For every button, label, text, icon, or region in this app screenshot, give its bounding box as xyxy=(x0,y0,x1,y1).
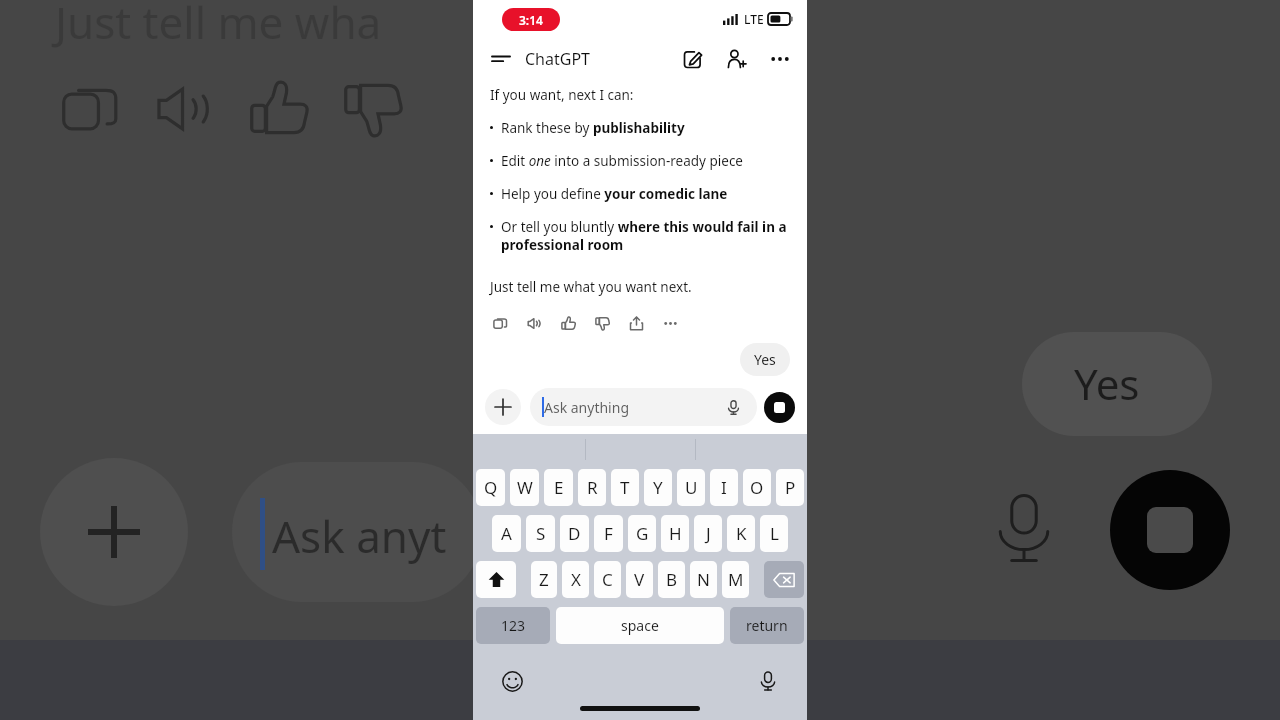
button[interactable]: Bad response xyxy=(589,310,615,336)
staticText: K xyxy=(736,522,747,545)
staticText: V xyxy=(634,568,645,591)
button[interactable]: N xyxy=(690,561,717,598)
button[interactable]: ChatGPT xyxy=(525,48,590,70)
button[interactable]: Z xyxy=(531,561,557,598)
staticText: Help you define your comedic lane xyxy=(501,185,728,203)
staticText: Yes xyxy=(754,350,776,369)
staticText: return xyxy=(746,616,788,635)
button[interactable]: T xyxy=(611,469,639,506)
button[interactable]: More options xyxy=(765,44,795,74)
button[interactable]: J xyxy=(694,515,722,552)
staticText: 123 xyxy=(501,616,526,635)
button[interactable]: L xyxy=(760,515,788,552)
button[interactable]: Good response xyxy=(555,310,581,336)
staticText: I xyxy=(721,476,727,499)
button[interactable]: E xyxy=(544,469,573,506)
staticText: P xyxy=(785,476,796,499)
button[interactable]: W xyxy=(510,469,539,506)
button[interactable]: F xyxy=(594,515,623,552)
staticText: Just tell me what you want next. xyxy=(490,278,692,296)
button[interactable]: 123 xyxy=(476,607,550,644)
button[interactable]: Menu xyxy=(485,43,517,75)
button[interactable]: G xyxy=(628,515,656,552)
button[interactable]: Y xyxy=(644,469,672,506)
button[interactable]: Add people xyxy=(721,44,751,74)
button[interactable]: D xyxy=(560,515,589,552)
button[interactable]: Q xyxy=(476,469,505,506)
staticText: L xyxy=(770,522,779,545)
staticText: A xyxy=(501,522,512,545)
button[interactable]: P xyxy=(776,469,804,506)
staticText: B xyxy=(666,568,678,591)
staticText: Z xyxy=(539,568,549,591)
button[interactable]: R xyxy=(578,469,606,506)
button[interactable]: More xyxy=(657,310,683,336)
button[interactable]: B xyxy=(658,561,685,598)
button[interactable]: X xyxy=(562,561,589,598)
staticText: M xyxy=(728,568,744,591)
staticText: Rank these by publishability xyxy=(501,119,685,137)
button[interactable]: return xyxy=(730,607,804,644)
staticText: 3:14 xyxy=(519,12,543,28)
button[interactable]: Stop xyxy=(764,392,795,423)
button[interactable]: V xyxy=(626,561,653,598)
button[interactable]: A xyxy=(492,515,521,552)
button[interactable]: Emoji xyxy=(497,666,527,696)
button[interactable]: O xyxy=(743,469,771,506)
staticText: C xyxy=(602,568,613,591)
staticText: S xyxy=(536,522,546,545)
staticText: Or tell you bluntly where this would fai… xyxy=(501,218,790,254)
staticText: E xyxy=(554,476,564,499)
button[interactable]: Read aloud xyxy=(521,310,547,336)
button[interactable]: New chat xyxy=(677,44,707,74)
button[interactable]: Voice input xyxy=(721,395,745,419)
staticText: X xyxy=(571,568,581,591)
button[interactable]: Add attachment xyxy=(485,389,521,425)
button[interactable]: space xyxy=(556,607,724,644)
staticText: Yes xyxy=(1074,355,1140,412)
staticText: Just tell me wha xyxy=(55,0,382,52)
button[interactable]: H xyxy=(661,515,689,552)
button[interactable]: K xyxy=(727,515,755,552)
staticText: T xyxy=(620,476,630,499)
button[interactable]: M xyxy=(722,561,749,598)
button[interactable]: C xyxy=(594,561,621,598)
staticText: Edit one into a submission-ready piece xyxy=(501,152,743,170)
staticText: Ask anything xyxy=(544,398,629,417)
staticText: O xyxy=(750,476,764,499)
button[interactable]: U xyxy=(677,469,705,506)
staticText: N xyxy=(697,568,710,591)
button[interactable]: Shift xyxy=(476,561,516,598)
staticText: G xyxy=(636,522,649,545)
staticText: J xyxy=(706,522,711,545)
button[interactable]: Dictate xyxy=(753,666,783,696)
button[interactable]: Ask anything xyxy=(530,388,757,426)
staticText: If you want, next I can: xyxy=(490,86,634,104)
staticText: Y xyxy=(653,476,663,499)
button[interactable]: Share xyxy=(623,310,649,336)
staticText: Ask anyt xyxy=(272,506,447,566)
button[interactable]: I xyxy=(710,469,738,506)
staticText: D xyxy=(568,522,581,545)
staticText: F xyxy=(604,522,613,545)
staticText: Q xyxy=(484,476,498,499)
staticText: U xyxy=(685,476,698,499)
staticText: H xyxy=(669,522,682,545)
staticText: space xyxy=(621,616,659,635)
button[interactable]: S xyxy=(526,515,555,552)
staticText: LTE xyxy=(744,11,764,27)
staticText: W xyxy=(517,476,533,499)
button[interactable]: Copy xyxy=(487,310,513,336)
button[interactable]: Backspace xyxy=(764,561,804,598)
button[interactable]: Yes xyxy=(740,343,790,376)
staticText: R xyxy=(587,476,598,499)
